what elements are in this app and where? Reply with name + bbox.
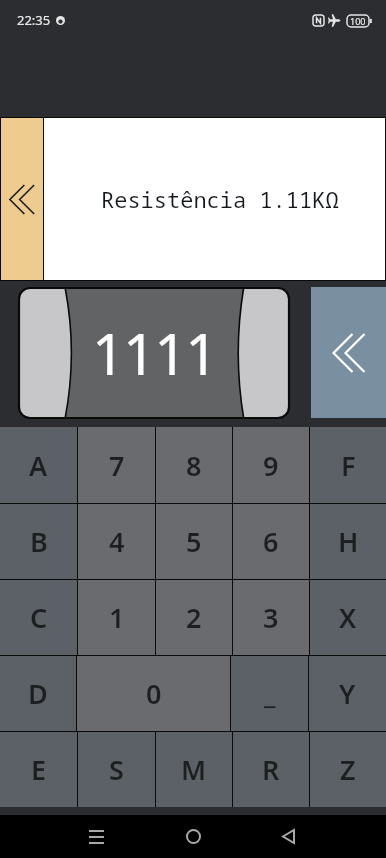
- button[interactable]: A: [0, 427, 77, 503]
- button[interactable]: 4: [78, 504, 155, 579]
- staticText: 9: [263, 447, 279, 484]
- button[interactable]: _: [231, 656, 308, 731]
- staticText: C: [30, 599, 48, 636]
- button[interactable]: F: [310, 427, 386, 503]
- staticText: 2: [186, 599, 202, 636]
- button[interactable]: C: [0, 580, 77, 655]
- staticText: 1111: [92, 314, 217, 392]
- staticText: D: [28, 675, 48, 712]
- staticText: 100: [350, 15, 366, 27]
- staticText: 6: [263, 523, 279, 560]
- staticText: _: [264, 675, 276, 712]
- button[interactable]: 6: [233, 504, 309, 579]
- button[interactable]: Recent apps: [74, 815, 118, 858]
- staticText: 22:35: [17, 11, 51, 29]
- button[interactable]: B: [0, 504, 77, 579]
- button[interactable]: E: [0, 732, 77, 807]
- staticText: 0: [146, 675, 162, 712]
- button[interactable]: 1: [78, 580, 155, 655]
- button[interactable]: 1111: [19, 288, 289, 418]
- button[interactable]: R: [233, 732, 309, 807]
- button[interactable]: 5: [156, 504, 232, 579]
- staticText: 5: [186, 523, 202, 560]
- button[interactable]: Back: [266, 815, 310, 858]
- staticText: Resistência 1.11KΩ: [101, 184, 339, 214]
- button[interactable]: 7: [78, 427, 155, 503]
- button[interactable]: X: [310, 580, 386, 655]
- staticText: Y: [339, 675, 356, 712]
- button[interactable]: H: [310, 504, 386, 579]
- staticText: 3: [263, 599, 279, 636]
- button[interactable]: 8: [156, 427, 232, 503]
- staticText: A: [29, 447, 48, 484]
- staticText: R: [262, 751, 280, 788]
- button[interactable]: D: [0, 656, 76, 731]
- button[interactable]: M: [156, 732, 232, 807]
- button[interactable]: S: [78, 732, 155, 807]
- button[interactable]: Previous: [1, 118, 43, 280]
- staticText: Z: [340, 751, 356, 788]
- button[interactable]: Delete: [311, 287, 386, 418]
- staticText: B: [30, 523, 48, 560]
- button[interactable]: 3: [233, 580, 309, 655]
- staticText: F: [341, 447, 356, 484]
- staticText: X: [339, 599, 357, 636]
- staticText: 1: [109, 599, 125, 636]
- staticText: 7: [109, 447, 125, 484]
- staticText: 4: [109, 523, 125, 560]
- staticText: 8: [186, 447, 202, 484]
- staticText: H: [338, 523, 359, 560]
- button[interactable]: Y: [309, 656, 386, 731]
- staticText: E: [31, 751, 47, 788]
- staticText: M: [181, 751, 207, 788]
- button[interactable]: 2: [156, 580, 232, 655]
- button[interactable]: 0: [77, 656, 230, 731]
- staticText: S: [109, 751, 124, 788]
- button[interactable]: Home: [171, 815, 215, 858]
- button[interactable]: 9: [233, 427, 309, 503]
- button[interactable]: Z: [310, 732, 386, 807]
